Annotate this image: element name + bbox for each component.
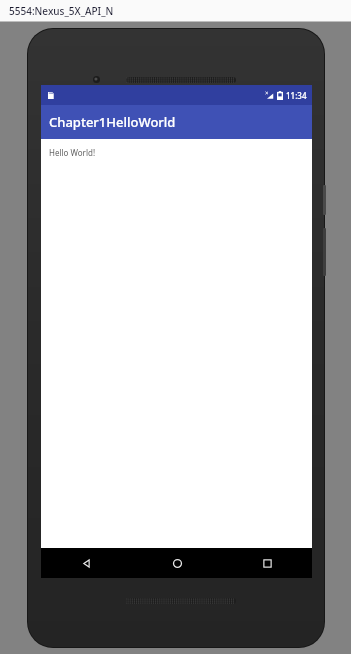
button[interactable]: Recent apps xyxy=(222,548,312,578)
staticText: 5554:Nexus_5X_API_N xyxy=(9,4,114,18)
staticText: Hello World! xyxy=(49,147,96,158)
button[interactable]: Back xyxy=(41,548,132,578)
other: SD card xyxy=(46,91,55,100)
button[interactable]: Home xyxy=(132,548,222,578)
staticText: Chapter1HelloWorld xyxy=(49,113,176,131)
button[interactable]: Chapter1HelloWorld xyxy=(41,105,312,139)
staticText: 11:34 xyxy=(286,90,307,101)
